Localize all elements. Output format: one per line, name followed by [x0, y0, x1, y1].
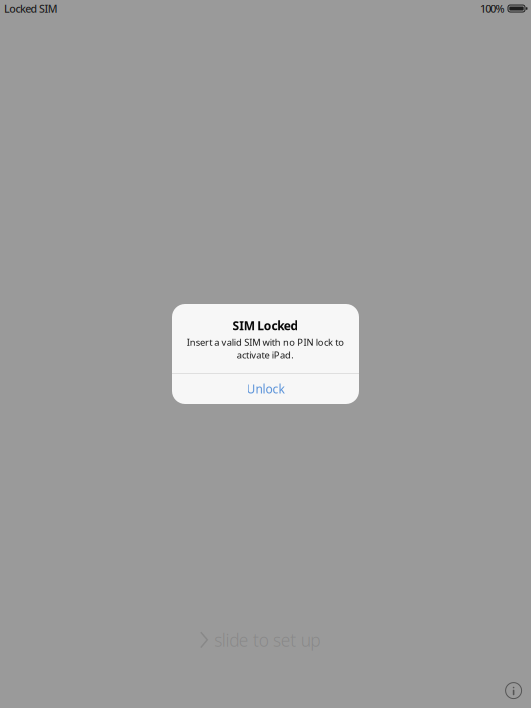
staticText: Locked SIM	[4, 1, 58, 16]
staticText: 100%	[480, 1, 504, 16]
staticText: activate iPad.	[237, 349, 294, 361]
button[interactable]: Info	[498, 675, 530, 707]
staticText: SIM Locked	[233, 317, 298, 333]
button[interactable]: Unlock	[172, 374, 359, 404]
staticText: Unlock	[246, 381, 284, 397]
staticText: Insert a valid SIM with no PIN lock to	[187, 336, 344, 348]
button[interactable]: slide to set up	[200, 629, 320, 651]
staticText: slide to set up	[214, 628, 320, 651]
